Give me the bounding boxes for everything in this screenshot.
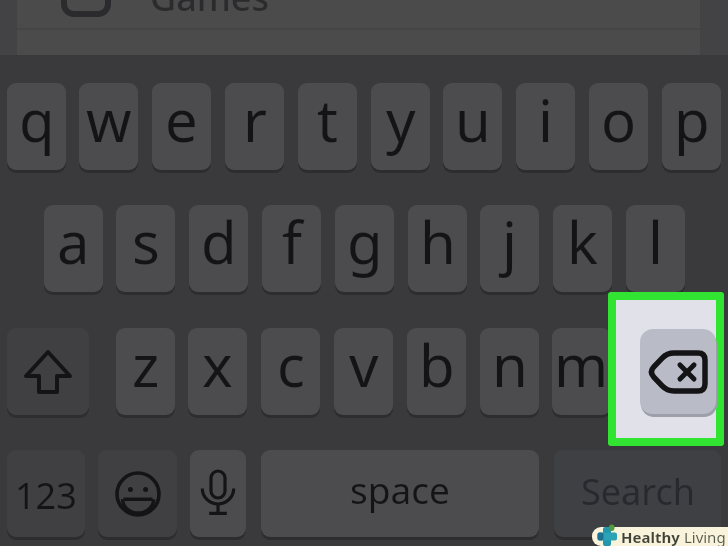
button[interactable]: t (298, 83, 357, 170)
staticText: Living (680, 527, 726, 546)
staticText: Games (150, 0, 270, 17)
button[interactable]: e (152, 83, 211, 170)
button[interactable]: n (480, 328, 539, 415)
staticText: s (132, 205, 160, 281)
button[interactable]: r (225, 83, 284, 170)
staticText: b (419, 328, 455, 404)
button[interactable]: l (626, 205, 685, 292)
button[interactable]: o (589, 83, 648, 170)
button[interactable]: w (79, 83, 138, 170)
staticText: d (201, 205, 237, 281)
staticText: t (317, 83, 338, 159)
staticText: e (165, 83, 198, 159)
staticText: x (202, 328, 233, 404)
staticText: w (86, 83, 132, 159)
button[interactable] (98, 450, 177, 537)
staticText: n (492, 328, 528, 404)
staticText: space (350, 464, 450, 514)
button[interactable]: p (662, 83, 721, 170)
staticText: z (132, 328, 160, 404)
staticText: a (57, 205, 90, 281)
staticText: p (674, 83, 710, 159)
staticText: h (420, 205, 456, 281)
button[interactable]: c (261, 328, 320, 415)
button[interactable]: v (334, 328, 393, 415)
button[interactable]: j (480, 205, 539, 292)
staticText: j (502, 205, 517, 281)
button[interactable]: Search (554, 450, 721, 537)
button[interactable]: space (261, 450, 539, 537)
button[interactable]: b (407, 328, 466, 415)
button[interactable]: x (188, 328, 247, 415)
button[interactable]: y (371, 83, 430, 170)
button[interactable]: a (44, 205, 103, 292)
staticText: r (243, 83, 267, 159)
staticText: g (347, 205, 383, 281)
button[interactable]: g (335, 205, 394, 292)
staticText: k (567, 205, 598, 281)
button[interactable] (640, 328, 721, 415)
button[interactable]: Healthy (592, 527, 728, 546)
button[interactable]: s (116, 205, 175, 292)
staticText: m (554, 328, 609, 404)
staticText: i (538, 83, 553, 159)
button[interactable]: 123 (7, 450, 85, 537)
staticText: 123 (15, 471, 77, 520)
staticText: o (601, 83, 637, 159)
staticText: y (386, 83, 416, 159)
staticText: Search (581, 467, 695, 516)
staticText: u (455, 83, 491, 159)
staticText: v (349, 328, 379, 404)
staticText: q (19, 83, 55, 159)
button[interactable] (190, 450, 246, 537)
button[interactable]: k (553, 205, 612, 292)
button[interactable]: z (116, 328, 175, 415)
button[interactable]: d (189, 205, 248, 292)
staticText: c (277, 328, 305, 404)
button[interactable] (640, 329, 716, 414)
button[interactable]: q (7, 83, 66, 170)
button[interactable]: f (262, 205, 321, 292)
button[interactable]: m (552, 328, 611, 415)
staticText: Healthy (621, 527, 680, 546)
button[interactable]: u (443, 83, 502, 170)
staticText: f (282, 205, 302, 281)
button[interactable]: h (408, 205, 467, 292)
staticText: l (648, 205, 663, 281)
button[interactable] (7, 328, 89, 415)
button[interactable]: i (516, 83, 575, 170)
